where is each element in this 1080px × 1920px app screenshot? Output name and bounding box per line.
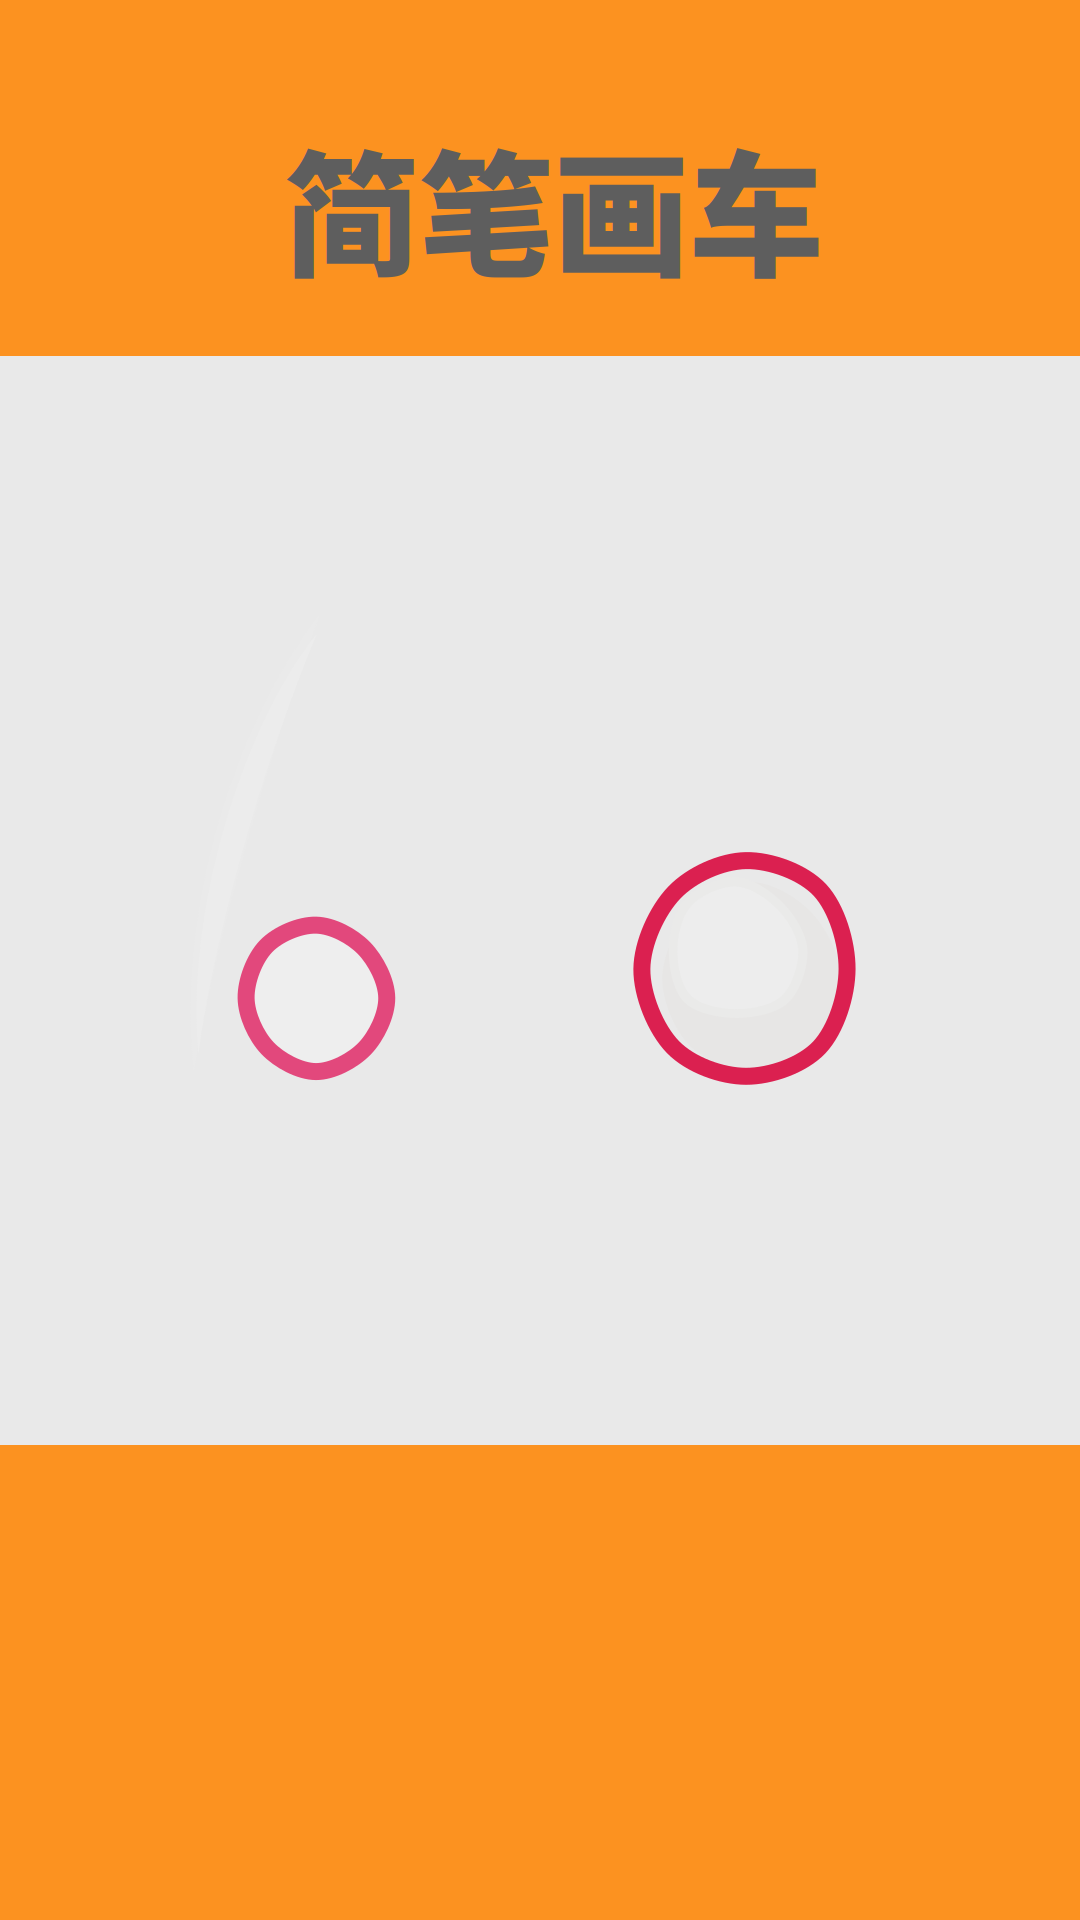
staticText: 简笔画车 (284, 109, 824, 304)
